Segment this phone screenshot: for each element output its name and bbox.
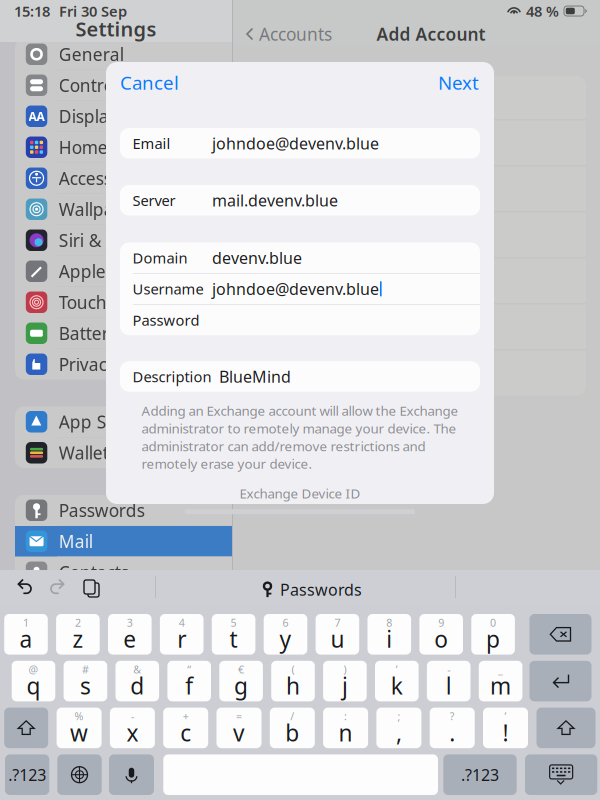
button[interactable]: Return xyxy=(529,661,591,701)
button[interactable]: Undo xyxy=(17,578,32,594)
button[interactable]: + xyxy=(163,708,208,748)
staticText: 6 xyxy=(282,615,288,630)
staticText: BlueMind xyxy=(219,366,291,387)
button[interactable]: Delete xyxy=(529,614,591,655)
button[interactable]: Dictate xyxy=(109,754,154,795)
button[interactable]: 1 xyxy=(4,614,48,655)
staticText: Email xyxy=(133,133,171,153)
button[interactable]: Wallet & Apple Pay xyxy=(15,437,243,468)
button[interactable]: Apple Pencil xyxy=(15,256,243,286)
button[interactable]: ’ xyxy=(483,708,528,748)
button[interactable]: # xyxy=(64,661,107,701)
button[interactable]: 7 xyxy=(316,614,359,655)
staticText: 48 % xyxy=(526,1,559,21)
staticText: j xyxy=(342,671,348,701)
staticText: devenv.blue xyxy=(212,247,302,268)
button[interactable]: 6 xyxy=(264,614,307,655)
button[interactable]: Hide Keyboard xyxy=(525,754,597,795)
staticText: Accessibility xyxy=(59,167,154,190)
staticText: Add Account xyxy=(376,22,485,45)
button[interactable]: AA xyxy=(15,101,243,131)
staticText: Settings xyxy=(75,15,156,42)
button[interactable]: Numbers and Symbols xyxy=(443,754,517,795)
button[interactable]: Redo xyxy=(50,578,65,594)
button[interactable]: Next Keyboard xyxy=(57,754,102,795)
button[interactable]: General xyxy=(15,39,243,69)
button[interactable]: ) xyxy=(323,661,367,701)
staticText: ’ xyxy=(504,709,506,723)
button[interactable]: Passwords xyxy=(262,579,362,600)
button[interactable]: Cancel xyxy=(120,62,191,103)
staticText: 2 xyxy=(75,615,81,630)
button[interactable]: Passwords xyxy=(15,495,243,525)
staticText: App Store xyxy=(59,410,140,433)
button[interactable]: / xyxy=(270,708,315,748)
button[interactable]: Touch ID & Passcode xyxy=(15,287,243,317)
button[interactable]: Shift xyxy=(4,708,48,748)
staticText: ! xyxy=(502,717,508,748)
button[interactable]: 4 xyxy=(160,614,203,655)
staticText: Apple Pencil xyxy=(59,260,158,283)
staticText: ( xyxy=(291,662,294,676)
button[interactable]: Contacts xyxy=(15,557,243,587)
button[interactable]: ’ xyxy=(375,661,419,701)
staticText: - xyxy=(131,709,134,723)
button[interactable]: Accessibility xyxy=(15,163,243,193)
button[interactable]: _ xyxy=(479,661,522,701)
button[interactable]: : xyxy=(323,708,368,748)
button[interactable]: Siri & Search xyxy=(15,225,243,255)
button[interactable]: Accounts xyxy=(246,22,338,45)
button[interactable]: - xyxy=(427,661,470,701)
button[interactable]: 3 xyxy=(108,614,152,655)
button[interactable]: Space xyxy=(163,754,438,795)
staticText: .?123 xyxy=(8,764,46,785)
button[interactable]: Wallpaper xyxy=(15,194,243,224)
button[interactable]: ? xyxy=(430,708,475,748)
button[interactable]: Paste xyxy=(81,578,98,596)
staticText: Domain xyxy=(133,248,188,267)
button[interactable]: Home Screen & Dock xyxy=(15,132,243,162)
staticText: johndoe@devenv.blue xyxy=(212,278,379,299)
staticText: johndoe@devenv.blue xyxy=(212,133,379,154)
staticText: Cancel xyxy=(120,70,179,95)
button[interactable]: @ xyxy=(12,661,55,701)
button[interactable]: Next xyxy=(426,62,479,103)
staticText: Home Screen & Dock xyxy=(59,136,232,159)
button[interactable]: % xyxy=(57,708,102,748)
staticText: p xyxy=(486,624,500,654)
button[interactable]: Mail xyxy=(15,526,243,556)
button[interactable]: “ xyxy=(167,661,211,701)
button[interactable]: Shift xyxy=(536,708,595,748)
staticText: g xyxy=(234,671,248,701)
button[interactable]: Numbers and Symbols xyxy=(5,754,49,795)
button[interactable]: ( xyxy=(271,661,315,701)
staticText: Mail xyxy=(59,530,93,553)
staticText: Server xyxy=(133,190,176,210)
staticText: e xyxy=(123,624,136,654)
button[interactable]: € xyxy=(219,661,263,701)
button[interactable]: 5 xyxy=(212,614,255,655)
staticText: “ xyxy=(187,662,191,676)
staticText: 9 xyxy=(438,615,444,630)
staticText: Username xyxy=(133,279,204,299)
staticText: f xyxy=(185,671,193,701)
button[interactable]: 2 xyxy=(56,614,100,655)
staticText: m xyxy=(490,671,511,701)
button[interactable]: - xyxy=(110,708,155,748)
staticText: Contacts xyxy=(59,561,129,584)
button[interactable]: Control Centre xyxy=(15,70,243,100)
staticText: Wallet & Apple Pay xyxy=(59,441,213,464)
button[interactable]: App Store xyxy=(15,406,243,437)
staticText: € xyxy=(238,662,244,676)
button[interactable]: 0 xyxy=(471,614,515,655)
button[interactable]: = xyxy=(216,708,261,748)
staticText: o xyxy=(434,624,448,654)
staticText: AA xyxy=(29,108,45,124)
button[interactable]: & xyxy=(115,661,159,701)
button[interactable]: Privacy xyxy=(15,349,243,379)
button[interactable]: ; xyxy=(376,708,421,748)
button[interactable]: 8 xyxy=(367,614,411,655)
button[interactable]: 9 xyxy=(419,614,463,655)
button[interactable]: Battery xyxy=(15,318,243,348)
staticText: Touch ID & Passcode xyxy=(59,291,229,314)
